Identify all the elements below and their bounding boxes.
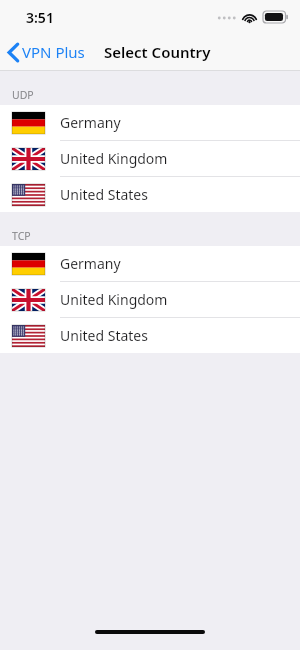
- button[interactable]: Germany: [0, 246, 300, 281]
- button[interactable]: United States: [0, 177, 300, 212]
- staticText: United Kingdom: [60, 290, 168, 309]
- staticText: VPN Plus: [22, 42, 85, 62]
- staticText: UDP: [12, 88, 34, 102]
- staticText: Germany: [60, 254, 121, 273]
- button[interactable]: United Kingdom: [0, 141, 300, 176]
- button[interactable]: Back: [0, 38, 93, 66]
- button[interactable]: Germany: [0, 105, 300, 140]
- staticText: United States: [60, 326, 148, 345]
- staticText: United States: [60, 185, 148, 204]
- staticText: TCP: [12, 229, 31, 243]
- staticText: 3:51: [26, 8, 54, 27]
- staticText: Select Country: [104, 42, 211, 62]
- staticText: United Kingdom: [60, 149, 168, 168]
- other: Back: [8, 43, 19, 62]
- button[interactable]: United Kingdom: [0, 282, 300, 317]
- button[interactable]: United States: [0, 318, 300, 353]
- staticText: Germany: [60, 113, 121, 132]
